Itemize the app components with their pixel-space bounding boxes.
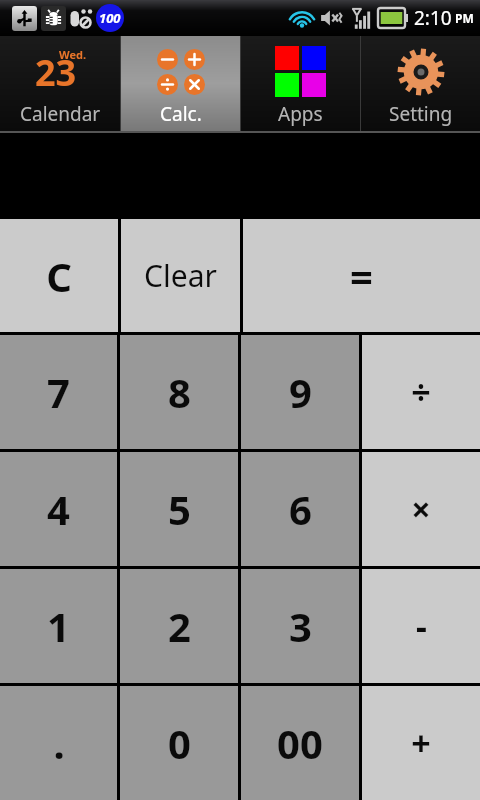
staticText: 100: [99, 9, 121, 27]
button[interactable]: 6: [241, 452, 359, 566]
staticText: ÷: [411, 369, 431, 415]
staticText: 8: [168, 365, 191, 419]
staticText: ×: [411, 486, 431, 532]
button[interactable]: -: [362, 569, 480, 683]
button[interactable]: ÷: [362, 335, 480, 449]
staticText: 6: [289, 482, 312, 536]
button[interactable]: 1: [0, 569, 117, 683]
button[interactable]: 0: [120, 686, 238, 800]
button[interactable]: C: [0, 219, 118, 332]
button[interactable]: 5: [120, 452, 238, 566]
button[interactable]: Apps: [241, 36, 360, 131]
staticText: 00: [277, 716, 323, 770]
staticText: 5: [168, 482, 191, 536]
staticText: =: [350, 249, 373, 303]
button[interactable]: 3: [241, 569, 359, 683]
staticText: 2: [168, 599, 191, 653]
button[interactable]: +: [362, 686, 480, 800]
staticText: Setting: [389, 101, 453, 127]
staticText: +: [411, 720, 431, 766]
staticText: 1: [47, 599, 70, 653]
staticText: 4: [47, 482, 70, 536]
button[interactable]: Setting: [361, 36, 480, 131]
button[interactable]: 8: [120, 335, 238, 449]
button[interactable]: 4: [0, 452, 117, 566]
staticText: Wed.: [59, 47, 87, 62]
button[interactable]: =: [243, 219, 480, 332]
button[interactable]: Clear: [121, 219, 240, 332]
button[interactable]: 7: [0, 335, 117, 449]
staticText: 2:10: [414, 5, 452, 31]
button[interactable]: 9: [241, 335, 359, 449]
staticText: Clear: [144, 255, 217, 296]
staticText: 3: [289, 599, 312, 653]
button[interactable]: .: [0, 686, 117, 800]
staticText: 9: [289, 365, 312, 419]
staticText: Calendar: [20, 101, 101, 127]
staticText: .: [53, 716, 65, 770]
button[interactable]: 00: [241, 686, 359, 800]
staticText: 0: [168, 716, 191, 770]
staticText: Calc.: [160, 101, 202, 127]
staticText: 7: [47, 365, 70, 419]
staticText: Apps: [278, 101, 323, 127]
staticText: 23: [35, 48, 77, 97]
staticText: PM: [455, 10, 474, 26]
button[interactable]: Calc.: [121, 36, 240, 131]
staticText: C: [46, 249, 72, 303]
button[interactable]: 2: [120, 569, 238, 683]
button[interactable]: ×: [362, 452, 480, 566]
staticText: -: [416, 603, 427, 649]
button[interactable]: Wed.: [0, 36, 120, 131]
